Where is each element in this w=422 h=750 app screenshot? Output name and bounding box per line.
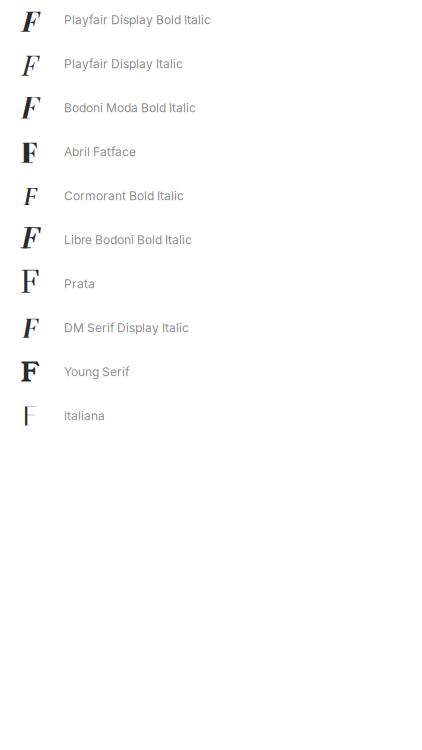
staticText: Playfair Display Italic bbox=[64, 57, 183, 71]
staticText: F bbox=[23, 179, 37, 213]
staticText: F bbox=[21, 222, 39, 257]
staticText: F bbox=[22, 45, 38, 83]
staticText: F bbox=[20, 352, 39, 392]
staticText: Libre Bodoni Bold Italic bbox=[64, 233, 192, 247]
staticText: F bbox=[23, 399, 37, 432]
staticText: F bbox=[20, 265, 39, 303]
staticText: Abril Fatface bbox=[64, 145, 136, 159]
staticText: DM Serif Display Italic bbox=[64, 321, 189, 335]
staticText: F bbox=[21, 87, 38, 129]
staticText: F bbox=[22, 309, 37, 347]
staticText: Italiana bbox=[64, 409, 105, 423]
staticText: Playfair Display Bold Italic bbox=[64, 13, 211, 27]
staticText: Prata bbox=[64, 277, 95, 291]
staticText: Bodoni Moda Bold Italic bbox=[64, 101, 196, 115]
staticText: F bbox=[21, 133, 38, 171]
staticText: F bbox=[22, 1, 38, 39]
staticText: Young Serif bbox=[64, 365, 129, 379]
staticText: Cormorant Bold Italic bbox=[64, 189, 184, 203]
